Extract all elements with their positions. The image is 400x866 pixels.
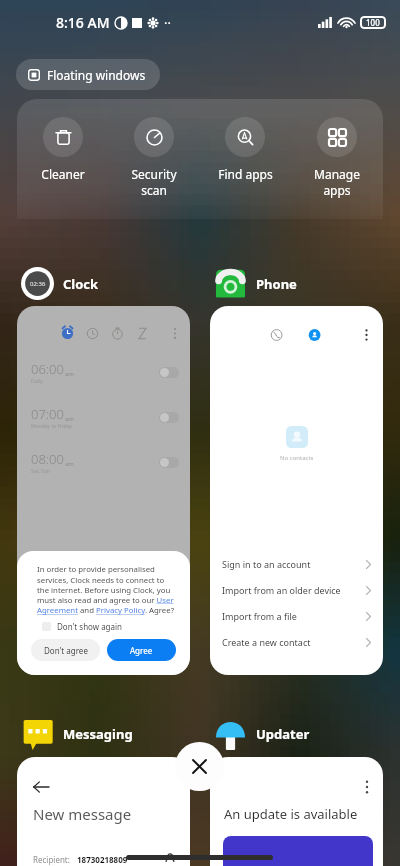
staticText: Agree — [130, 645, 153, 656]
button[interactable]: 06:00 — [17, 306, 190, 675]
button[interactable]: 08:00 — [31, 440, 179, 485]
button[interactable]: Updater — [214, 717, 310, 750]
staticText: Clock — [63, 275, 99, 293]
button[interactable]: Cleaner — [17, 99, 108, 219]
staticText: Cleaner — [41, 166, 85, 182]
button[interactable]: 07:00 — [31, 395, 179, 440]
button[interactable]: No contacts — [210, 306, 383, 675]
staticText: Don't show again — [57, 621, 123, 632]
button[interactable]: Import from an older device — [222, 577, 371, 603]
staticText: 8:16 AM — [56, 13, 110, 32]
button[interactable]: Agree — [107, 639, 176, 661]
button[interactable]: Floating windows — [16, 59, 160, 90]
button[interactable]: 02:36 — [21, 267, 99, 300]
staticText: Sign in to an account — [222, 558, 311, 570]
staticText: Daily — [31, 378, 43, 385]
staticText: In order to provide personalised service… — [37, 564, 175, 616]
button[interactable]: 06:00 — [31, 350, 179, 395]
staticText: Create a new contact — [222, 636, 311, 648]
staticText: Messaging — [63, 725, 133, 743]
button[interactable]: Create a new contact — [222, 629, 371, 655]
staticText: Manage apps — [314, 166, 360, 198]
staticText: New message — [33, 804, 132, 824]
staticText: 08:00 — [31, 450, 64, 468]
staticText: 06:00 — [31, 360, 64, 378]
staticText: Sat, Sun — [31, 468, 50, 475]
button[interactable]: Sign in to an account — [222, 551, 371, 577]
button[interactable]: More options — [365, 780, 369, 794]
staticText: am — [65, 370, 74, 378]
button[interactable]: Don't agree — [31, 639, 100, 661]
staticText: Recipient: — [33, 854, 70, 865]
button[interactable]: Phone — [214, 267, 297, 300]
button[interactable]: Close all — [175, 742, 224, 791]
staticText: Monday to Friday — [31, 423, 72, 430]
button[interactable]: More options — [210, 757, 383, 866]
button[interactable]: Don't show again — [42, 621, 123, 632]
button[interactable]: Security scan — [108, 99, 199, 219]
staticText: An update is available — [224, 805, 358, 823]
button[interactable]: Alarm toggle — [159, 367, 179, 378]
staticText: Floating windows — [47, 67, 146, 83]
staticText: 02:36 — [30, 280, 46, 288]
button[interactable]: Manage apps — [291, 99, 383, 219]
staticText: am — [65, 415, 74, 423]
staticText: Security scan — [131, 166, 177, 198]
button[interactable]: Alarm toggle — [159, 457, 179, 468]
staticText: Don't agree — [44, 645, 88, 656]
button[interactable]: Back — [33, 779, 49, 795]
staticText: 100 — [366, 17, 380, 28]
staticText: Phone — [256, 275, 297, 293]
button[interactable]: Back — [17, 757, 190, 866]
staticText: Updater — [256, 725, 310, 743]
staticText: Import from an older device — [222, 584, 341, 596]
button[interactable]: Alarm toggle — [159, 412, 179, 423]
staticText: 07:00 — [31, 405, 64, 423]
staticText: Find apps — [218, 166, 273, 182]
staticText: ·· — [164, 14, 171, 32]
staticText: No contacts — [280, 454, 314, 462]
button[interactable]: Find apps — [199, 99, 291, 219]
button[interactable]: Messaging — [21, 717, 133, 750]
staticText: 18730218809 — [77, 854, 128, 865]
staticText: Import from a file — [222, 610, 297, 622]
button[interactable]: Import from a file — [222, 603, 371, 629]
staticText: am — [65, 460, 74, 468]
